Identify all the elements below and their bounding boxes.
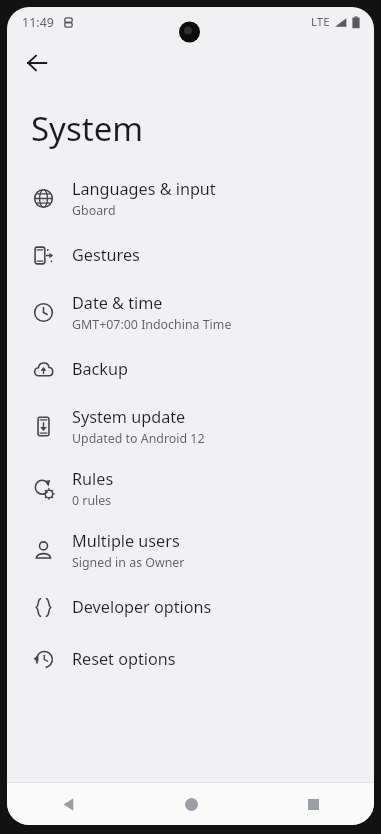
- button[interactable]: Back: [15, 41, 59, 85]
- staticText: GMT+07:00 Indochina Time: [72, 316, 232, 333]
- staticText: Reset options: [72, 648, 176, 670]
- button[interactable]: Reset options: [7, 633, 374, 685]
- button[interactable]: Gestures: [7, 229, 374, 281]
- button[interactable]: System update: [7, 395, 374, 457]
- button[interactable]: Developer options: [7, 581, 374, 633]
- button[interactable]: Rules: [7, 457, 374, 519]
- staticText: Developer options: [72, 596, 212, 618]
- staticText: Gestures: [72, 244, 140, 266]
- staticText: Date & time: [72, 292, 163, 314]
- staticText: System: [31, 106, 144, 151]
- staticText: Updated to Android 12: [72, 430, 205, 447]
- staticText: System update: [72, 406, 186, 428]
- button[interactable]: Recent apps: [252, 783, 374, 825]
- button[interactable]: Home: [130, 783, 252, 825]
- button[interactable]: Backup: [7, 343, 374, 395]
- staticText: 11:49: [22, 14, 54, 31]
- button[interactable]: Date & time: [7, 281, 374, 343]
- staticText: Gboard: [72, 202, 116, 219]
- staticText: Signed in as Owner: [72, 554, 185, 571]
- button[interactable]: Back: [7, 783, 130, 825]
- staticText: LTE: [311, 14, 330, 30]
- staticText: 0 rules: [72, 492, 112, 509]
- staticText: Languages & input: [72, 178, 216, 200]
- staticText: Rules: [72, 468, 114, 490]
- button[interactable]: Multiple users: [7, 519, 374, 581]
- staticText: Multiple users: [72, 530, 180, 552]
- button[interactable]: Languages & input: [7, 167, 374, 229]
- staticText: Backup: [72, 358, 128, 380]
